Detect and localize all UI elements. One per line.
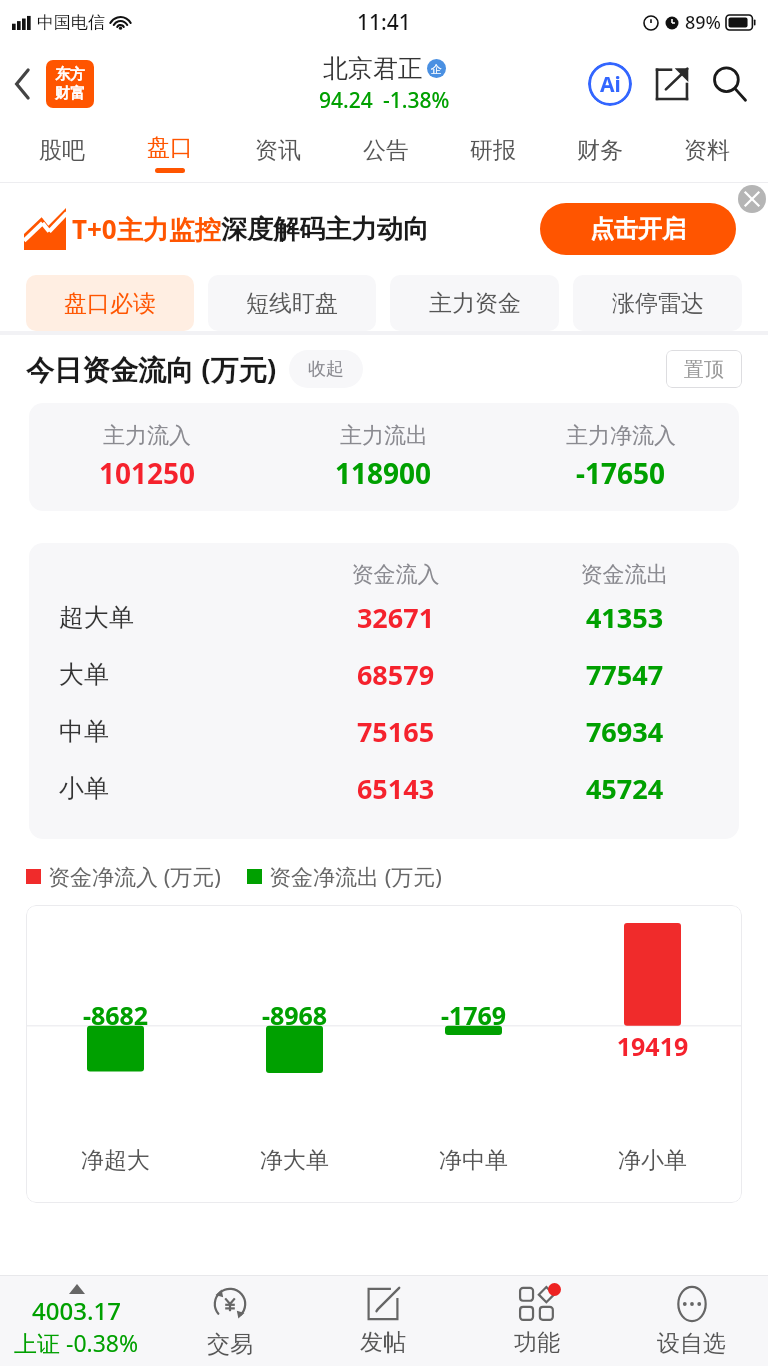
staticText: 资金净流出 (万元) xyxy=(269,861,442,891)
button[interactable]: 点击开启 xyxy=(540,203,736,255)
staticText: -1.38% xyxy=(383,86,450,115)
staticText: Ai xyxy=(600,70,621,99)
button[interactable]: 主力资金 xyxy=(390,275,559,331)
staticText: 118900 xyxy=(335,454,432,492)
staticText: -8968 xyxy=(205,998,384,1032)
button[interactable]: 设自选 xyxy=(614,1276,768,1366)
staticText: -17650 xyxy=(576,454,666,492)
staticText: 65143 xyxy=(281,770,510,807)
staticText: 净大单 xyxy=(205,1146,384,1175)
staticText: 东方 xyxy=(55,65,85,84)
staticText: 功能 xyxy=(514,1328,560,1357)
button[interactable]: 股吧 xyxy=(8,124,116,182)
button[interactable]: 盘口必读 xyxy=(26,275,194,331)
staticText: 净小单 xyxy=(563,1146,742,1175)
staticText: 中单 xyxy=(59,716,109,747)
staticText: -8682 xyxy=(26,998,205,1032)
button[interactable]: 4003.17 xyxy=(0,1276,153,1366)
staticText: 设自选 xyxy=(657,1329,726,1358)
staticText: 股吧 xyxy=(39,136,85,165)
button[interactable]: Back xyxy=(0,54,46,114)
staticText: 大单 xyxy=(59,659,109,690)
staticText: 深度解码主力动向 xyxy=(221,213,429,246)
button[interactable]: 资讯 xyxy=(224,124,332,182)
staticText: 盘口必读 xyxy=(64,289,156,318)
button[interactable]: 盘口 xyxy=(116,124,224,182)
staticText: 资讯 xyxy=(255,136,301,165)
staticText: T+0主力监控 xyxy=(72,211,221,247)
staticText: 76934 xyxy=(510,713,739,750)
staticText: 小单 xyxy=(59,773,109,804)
staticText: -1769 xyxy=(384,998,563,1032)
button[interactable]: 发帖 xyxy=(306,1276,460,1366)
staticText: 研报 xyxy=(470,136,516,165)
staticText: 主力流入 xyxy=(103,422,191,450)
staticText: 上证 -0.38% xyxy=(14,1327,139,1358)
staticText: 主力净流入 xyxy=(566,422,676,450)
staticText: 财务 xyxy=(577,136,623,165)
button[interactable]: 功能 xyxy=(460,1276,614,1366)
staticText: 68579 xyxy=(281,656,510,693)
staticText: 94.24 xyxy=(319,86,373,115)
staticText: 19419 xyxy=(563,1029,742,1063)
staticText: 北京君正 xyxy=(323,53,423,84)
button[interactable]: 置顶 xyxy=(666,350,742,388)
staticText: 交易 xyxy=(207,1330,253,1359)
button[interactable]: 短线盯盘 xyxy=(208,275,376,331)
staticText: 4003.17 xyxy=(32,1294,121,1327)
button[interactable]: 东方 xyxy=(46,60,94,108)
staticText: 今日资金流向 (万元) xyxy=(26,350,277,388)
staticText: 企 xyxy=(431,62,442,76)
staticText: 资料 xyxy=(684,136,730,165)
button[interactable]: AI assistant xyxy=(584,58,636,110)
button[interactable]: 收起 xyxy=(289,350,363,388)
staticText: 89% xyxy=(685,10,721,35)
button[interactable]: Search xyxy=(706,60,754,108)
staticText: 101250 xyxy=(99,454,196,492)
staticText: 资金净流入 (万元) xyxy=(48,861,221,891)
staticText: 短线盯盘 xyxy=(246,289,338,318)
staticText: 主力流出 xyxy=(340,422,428,450)
staticText: 资金流出 xyxy=(510,561,739,589)
button[interactable]: 公告 xyxy=(332,124,439,182)
staticText: 中国电信 xyxy=(37,12,105,33)
staticText: 主力资金 xyxy=(429,289,521,318)
staticText: 财富 xyxy=(55,84,85,103)
staticText: 置顶 xyxy=(684,357,724,382)
staticText: 净中单 xyxy=(384,1146,563,1175)
staticText: 超大单 xyxy=(59,602,134,633)
staticText: 41353 xyxy=(510,599,739,636)
staticText: 发帖 xyxy=(360,1328,406,1357)
staticText: 收起 xyxy=(308,358,344,381)
staticText: 净超大 xyxy=(26,1146,205,1175)
staticText: 涨停雷达 xyxy=(612,289,704,318)
button[interactable]: Close xyxy=(736,183,768,215)
staticText: 资金流入 xyxy=(281,561,510,589)
button[interactable]: 研报 xyxy=(439,124,546,182)
staticText: 点击开启 xyxy=(590,214,686,244)
button[interactable]: 交易 xyxy=(153,1276,306,1366)
button[interactable]: 财务 xyxy=(546,124,653,182)
staticText: 公告 xyxy=(363,136,409,165)
button[interactable]: 涨停雷达 xyxy=(573,275,742,331)
staticText: 77547 xyxy=(510,656,739,693)
staticText: 32671 xyxy=(281,599,510,636)
staticText: 75165 xyxy=(281,713,510,750)
staticText: 11:41 xyxy=(357,8,411,37)
staticText: 45724 xyxy=(510,770,739,807)
button[interactable]: 资料 xyxy=(653,124,760,182)
button[interactable]: Share xyxy=(648,60,696,108)
staticText: 盘口 xyxy=(147,133,193,162)
